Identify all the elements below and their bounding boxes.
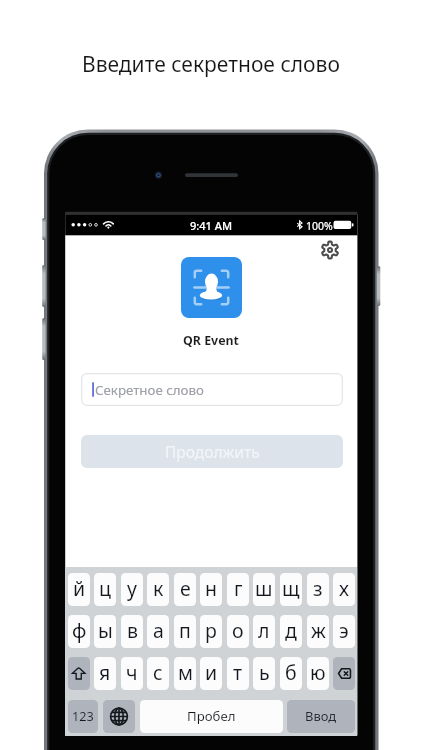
staticText: ы <box>98 617 113 644</box>
button[interactable]: Пробел <box>140 700 283 733</box>
staticText: я <box>99 659 111 686</box>
staticText: н <box>205 575 217 602</box>
staticText: Секретное слово <box>95 381 204 399</box>
button[interactable]: ы <box>94 615 116 648</box>
button[interactable]: щ <box>280 573 302 606</box>
button[interactable]: 123 <box>68 700 98 733</box>
staticText: к <box>153 575 164 602</box>
button[interactable]: к <box>147 573 169 606</box>
staticText: б <box>285 659 297 686</box>
staticText: ч <box>126 659 138 686</box>
staticText: 9:41 AM <box>190 218 233 233</box>
staticText: щ <box>282 575 300 602</box>
staticText: Введите секретное слово <box>82 50 340 79</box>
button[interactable]: й <box>68 573 90 606</box>
button[interactable]: ж <box>307 615 329 648</box>
staticText: т <box>233 659 243 686</box>
button[interactable]: ц <box>94 573 116 606</box>
staticText: е <box>180 575 191 602</box>
button[interactable]: п <box>174 615 196 648</box>
button[interactable]: г <box>227 573 249 606</box>
staticText: Ввод <box>305 707 337 725</box>
staticText: з <box>313 575 323 602</box>
button[interactable]: ч <box>121 657 143 690</box>
button[interactable]: Ввод <box>287 700 355 733</box>
button[interactable]: Секретное слово <box>81 373 343 406</box>
button[interactable]: Backspace <box>333 657 355 690</box>
button[interactable]: м <box>174 657 196 690</box>
button[interactable]: н <box>200 573 222 606</box>
button[interactable]: с <box>147 657 169 690</box>
button[interactable]: и <box>200 657 222 690</box>
button[interactable]: э <box>333 615 355 648</box>
staticText: г <box>234 575 243 602</box>
staticText: р <box>205 617 217 644</box>
button[interactable]: е <box>174 573 196 606</box>
staticText: ц <box>99 575 111 602</box>
staticText: ю <box>310 659 326 686</box>
button[interactable]: Продолжить <box>81 435 343 468</box>
button[interactable]: а <box>147 615 169 648</box>
staticText: м <box>178 659 193 686</box>
staticText: и <box>205 659 218 686</box>
staticText: й <box>73 575 86 602</box>
staticText: в <box>127 617 138 644</box>
staticText: 123 <box>72 707 94 724</box>
button[interactable]: я <box>94 657 116 690</box>
staticText: QR Event <box>183 332 239 349</box>
button[interactable]: т <box>227 657 249 690</box>
button[interactable]: д <box>280 615 302 648</box>
button[interactable]: у <box>121 573 143 606</box>
staticText: ф <box>72 617 87 644</box>
staticText: ь <box>259 659 270 686</box>
button[interactable]: Shift <box>68 657 90 690</box>
staticText: ш <box>255 575 273 602</box>
staticText: д <box>285 617 297 644</box>
staticText: 100% <box>306 219 333 233</box>
button[interactable]: р <box>200 615 222 648</box>
button[interactable]: ф <box>68 615 90 648</box>
staticText: а <box>153 617 164 644</box>
button[interactable]: QR Event <box>181 257 242 318</box>
button[interactable]: о <box>227 615 249 648</box>
button[interactable]: з <box>307 573 329 606</box>
staticText: э <box>339 617 349 644</box>
button[interactable]: б <box>280 657 302 690</box>
button[interactable]: ь <box>253 657 275 690</box>
button[interactable]: ю <box>307 657 329 690</box>
staticText: Продолжить <box>165 441 260 462</box>
staticText: ж <box>311 617 326 644</box>
staticText: у <box>127 575 137 602</box>
button[interactable]: в <box>121 615 143 648</box>
staticText: х <box>339 575 349 602</box>
button[interactable]: Settings <box>319 239 341 261</box>
button[interactable]: х <box>333 573 355 606</box>
button[interactable]: л <box>253 615 275 648</box>
button[interactable]: ш <box>253 573 275 606</box>
staticText: Пробел <box>187 707 236 725</box>
staticText: о <box>232 617 244 644</box>
staticText: с <box>153 659 163 686</box>
staticText: л <box>258 617 270 644</box>
staticText: п <box>179 617 191 644</box>
button[interactable]: Switch keyboard <box>103 700 135 733</box>
